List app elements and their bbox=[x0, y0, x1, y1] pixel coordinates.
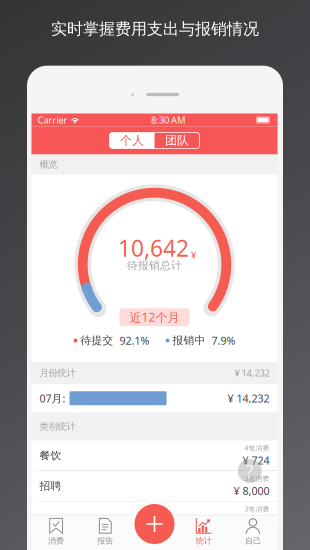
staticText: 待报销总计 bbox=[127, 259, 182, 272]
button[interactable]: 团队 bbox=[154, 132, 199, 148]
staticText: 统计 bbox=[196, 536, 212, 546]
staticText: 招聘 bbox=[39, 479, 61, 492]
button[interactable]: 消费 bbox=[31, 515, 81, 550]
staticText: 报告 bbox=[97, 536, 113, 546]
staticText: 概览 bbox=[39, 159, 57, 170]
staticText: 团队 bbox=[165, 133, 189, 148]
staticText: 月份统计 bbox=[39, 367, 75, 379]
button[interactable]: 统计 bbox=[179, 515, 228, 550]
staticText: 待提交 bbox=[80, 334, 113, 347]
staticText: 餐饮 bbox=[39, 449, 61, 462]
button[interactable]: 招聘 bbox=[31, 471, 277, 501]
staticText: 个人 bbox=[120, 133, 144, 148]
staticText: ¥ 724 bbox=[242, 453, 269, 467]
button[interactable]: Help bbox=[238, 459, 262, 483]
staticText: Carrier bbox=[37, 114, 67, 126]
staticText: 07月: bbox=[39, 391, 65, 405]
button[interactable]: 个人 bbox=[109, 132, 154, 148]
staticText: 近12个月 bbox=[129, 309, 179, 325]
staticText: 3笔消费 bbox=[244, 474, 269, 483]
staticText: 3笔消费 bbox=[244, 504, 269, 513]
staticText: ¥ 8,000 bbox=[233, 484, 269, 498]
staticText: 自己 bbox=[245, 536, 261, 546]
button[interactable]: 报告 bbox=[81, 515, 130, 550]
button[interactable]: 近12个月 bbox=[119, 308, 189, 326]
staticText: ? bbox=[246, 459, 254, 482]
button[interactable]: 自己 bbox=[228, 515, 277, 550]
staticText: 类别统计 bbox=[39, 421, 75, 432]
staticText: ¥ bbox=[191, 249, 196, 261]
button[interactable]: Add expense bbox=[134, 504, 174, 544]
button[interactable]: 07月: bbox=[31, 384, 277, 412]
staticText: 消费 bbox=[48, 536, 64, 546]
staticText: 4笔消费 bbox=[244, 443, 269, 452]
staticText: ¥ 14,232 bbox=[227, 391, 269, 405]
staticText: 报销中 bbox=[172, 334, 205, 347]
staticText: ¥ 14,232 bbox=[234, 367, 269, 379]
staticText: 实时掌握费用支出与报销情况 bbox=[51, 19, 259, 39]
button[interactable] bbox=[31, 501, 277, 531]
button[interactable]: 餐饮 bbox=[31, 440, 277, 470]
staticText: 92.1% bbox=[119, 333, 149, 348]
staticText: 10,642 bbox=[118, 233, 189, 263]
staticText: 7.9% bbox=[211, 333, 235, 348]
staticText: 8:30 AM bbox=[151, 114, 185, 126]
